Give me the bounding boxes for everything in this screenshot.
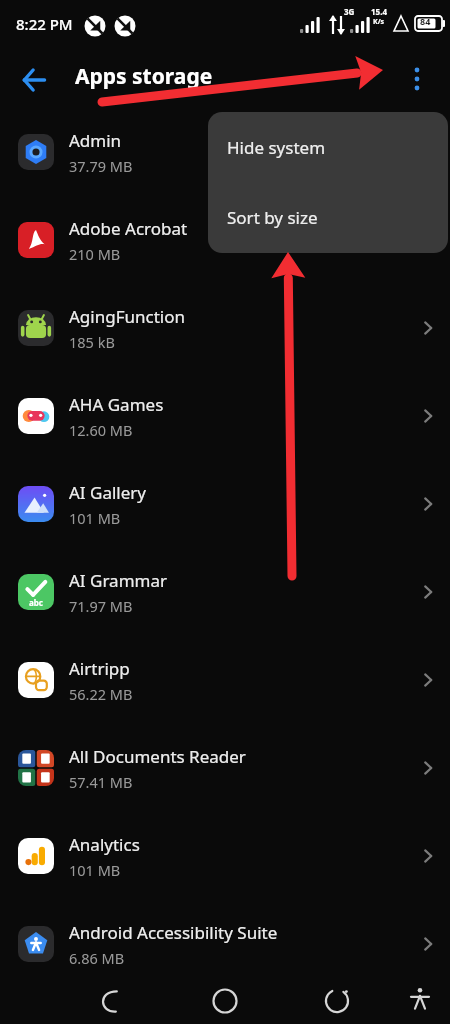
staticText: Android Accessibility Suite	[69, 921, 278, 944]
staticText: 210 MB	[69, 244, 121, 264]
button[interactable]: Android Accessibility Suite	[0, 900, 450, 988]
button[interactable]: Sort by size	[208, 182, 448, 253]
staticText: 6.86 MB	[69, 948, 125, 968]
staticText: 57.41 MB	[69, 772, 133, 792]
staticText: 185 kB	[69, 332, 115, 352]
button[interactable]: abc	[0, 548, 450, 636]
staticText: Adobe Acrobat	[69, 217, 188, 240]
staticText: K/s	[373, 17, 385, 27]
staticText: 8:22 PM	[16, 14, 73, 34]
staticText: 56.22 MB	[69, 684, 133, 704]
staticText: Airtripp	[69, 657, 130, 680]
staticText: 12.60 MB	[69, 420, 133, 440]
button[interactable]: Hide system	[208, 112, 448, 182]
button[interactable]: AHA Games	[0, 372, 450, 460]
button[interactable]: AgingFunction	[0, 284, 450, 372]
button[interactable]: Back	[88, 977, 136, 1024]
staticText: 71.97 MB	[69, 596, 133, 616]
button[interactable]: More options	[396, 58, 438, 100]
button[interactable]: Accessibility	[398, 977, 442, 1021]
staticText: AI Grammar	[69, 569, 167, 592]
staticText: Hide system	[227, 136, 326, 159]
button[interactable]: Analytics	[0, 812, 450, 900]
button[interactable]: Back	[12, 58, 56, 102]
staticText: Admin	[69, 129, 122, 152]
staticText: 37.79 MB	[69, 156, 133, 176]
button[interactable]: Home	[201, 977, 249, 1024]
staticText: Apps storage	[75, 62, 213, 91]
staticText: Sort by size	[227, 206, 318, 229]
button[interactable]: Recents	[313, 977, 361, 1024]
staticText: abc	[29, 597, 43, 608]
staticText: 101 MB	[69, 508, 121, 528]
staticText: 15.4	[371, 6, 387, 17]
button[interactable]: Admin	[0, 108, 450, 196]
button[interactable]: AI Gallery	[0, 460, 450, 548]
staticText: AgingFunction	[69, 305, 185, 328]
staticText: 3G	[344, 6, 355, 17]
button[interactable]: All Documents Reader	[0, 724, 450, 812]
staticText: AI Gallery	[69, 481, 147, 504]
staticText: 101 MB	[69, 860, 121, 880]
button[interactable]: Airtripp	[0, 636, 450, 724]
staticText: Analytics	[69, 833, 140, 856]
staticText: AHA Games	[69, 393, 164, 416]
button[interactable]: Adobe Acrobat	[0, 196, 450, 284]
staticText: All Documents Reader	[69, 745, 246, 768]
staticText: 84	[420, 15, 431, 27]
